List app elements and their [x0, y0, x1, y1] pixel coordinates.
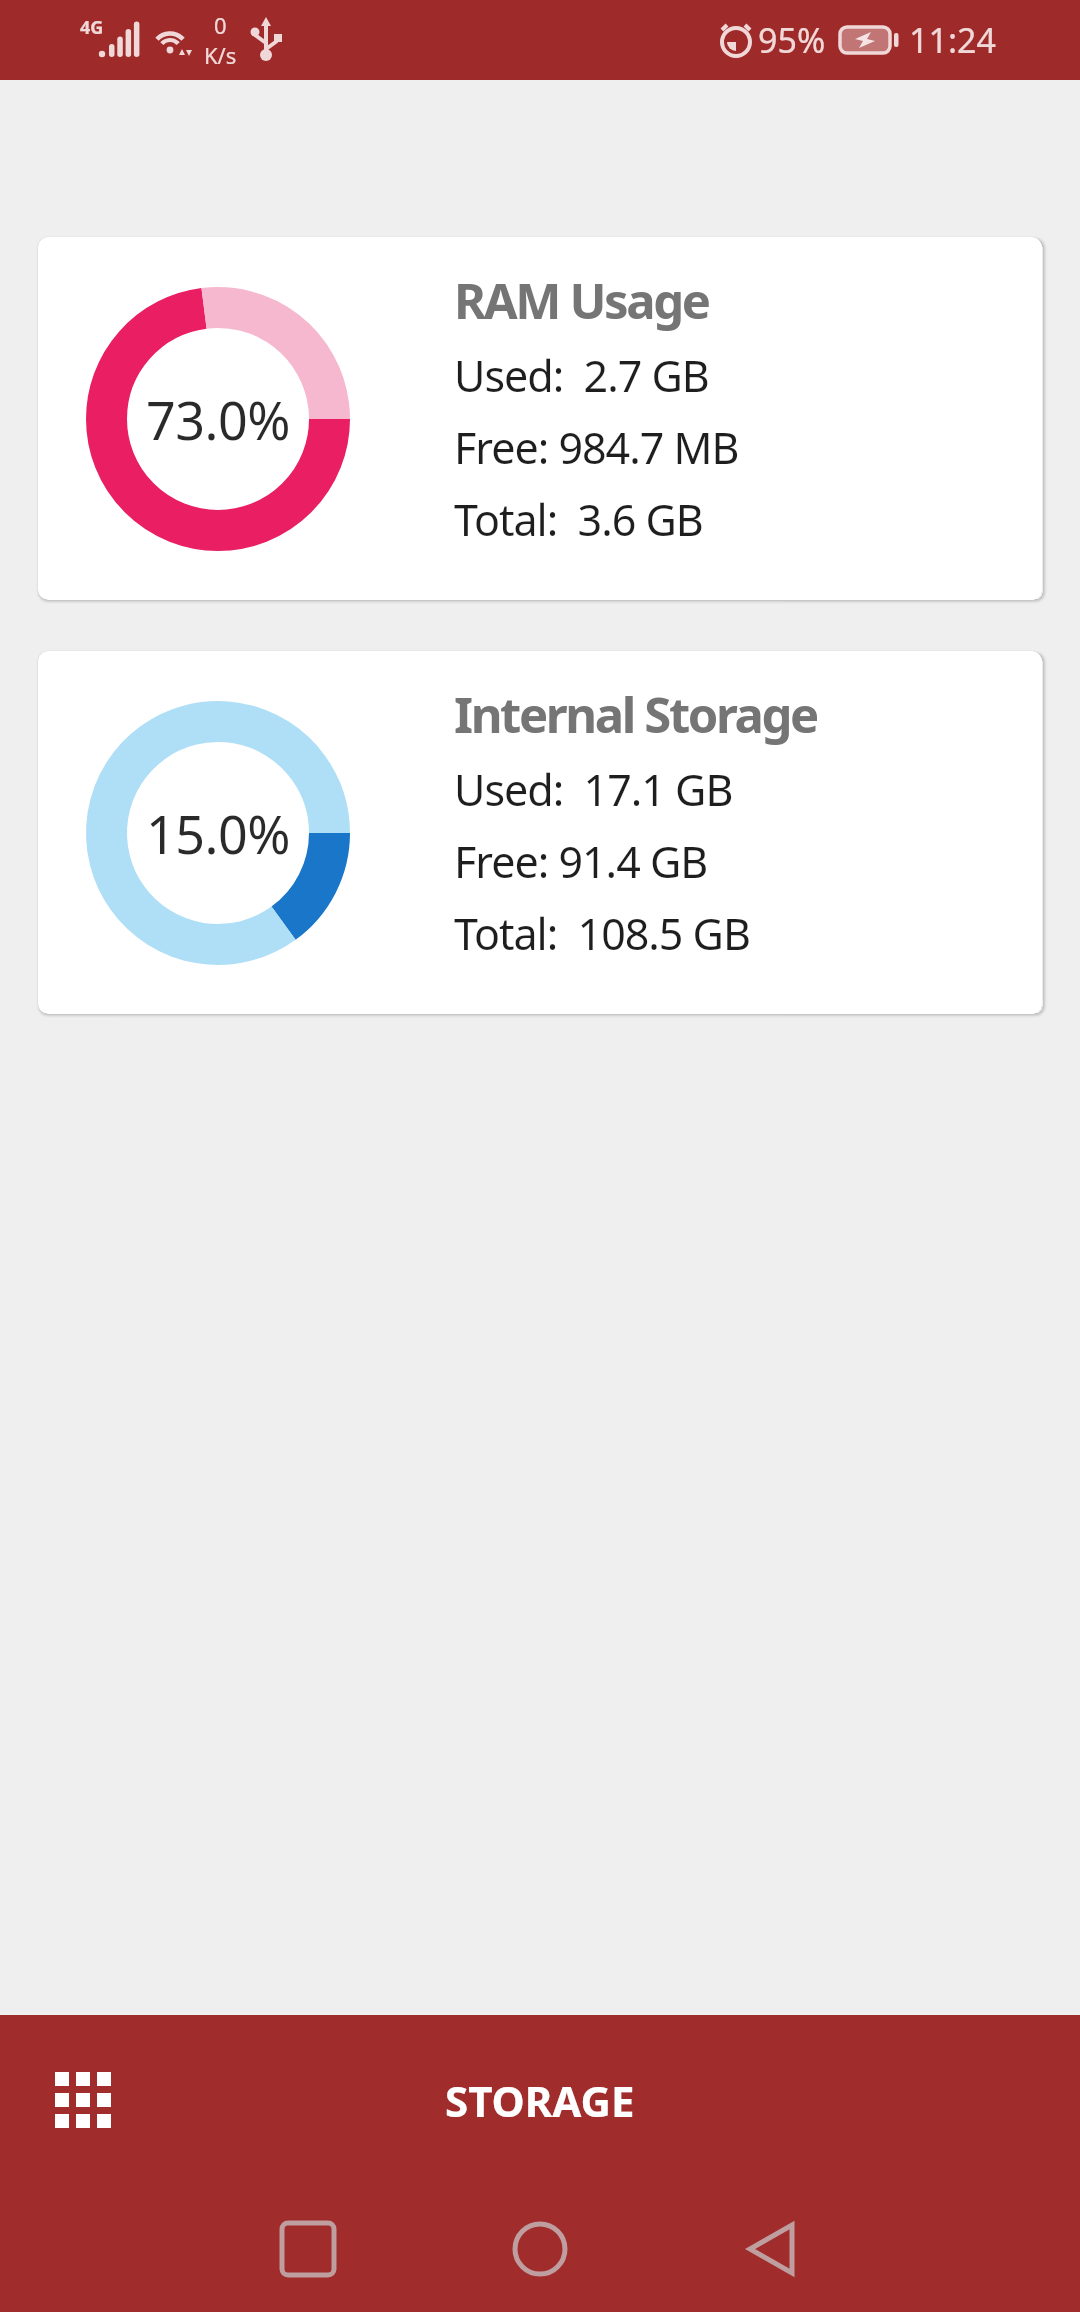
staticText: STORAGE: [445, 2072, 635, 2129]
staticText: Free: 984.7 MB: [454, 418, 739, 477]
button[interactable]: [728, 2205, 816, 2293]
button[interactable]: [496, 2205, 584, 2293]
staticText: Used: 17.1 GB: [454, 760, 733, 819]
staticText: 4G: [80, 15, 104, 40]
staticText: RAM Usage: [454, 267, 709, 334]
staticText: Used: 2.7 GB: [454, 346, 709, 405]
button[interactable]: [264, 2205, 352, 2293]
staticText: 0: [214, 10, 227, 40]
staticText: Free: 91.4 GB: [454, 832, 708, 891]
staticText: 73.0%: [146, 384, 290, 455]
button[interactable]: 73.0%: [38, 237, 1042, 600]
staticText: Total: 3.6 GB: [454, 490, 703, 549]
staticText: 15.0%: [146, 798, 290, 869]
staticText: 11:24: [909, 17, 996, 63]
staticText: Internal Storage: [454, 681, 817, 748]
button[interactable]: [55, 2072, 111, 2128]
staticText: Total: 108.5 GB: [454, 904, 750, 963]
staticText: 95%: [758, 17, 826, 63]
button[interactable]: 15.0%: [38, 651, 1042, 1014]
staticText: K/s: [204, 40, 237, 70]
